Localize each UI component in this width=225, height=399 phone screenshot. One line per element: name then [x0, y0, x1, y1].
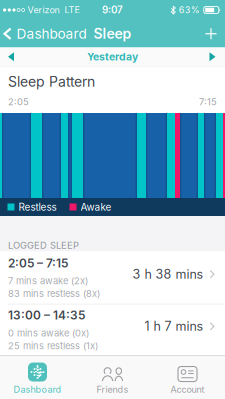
staticText: LTE [65, 4, 80, 15]
button[interactable]: Account [150, 356, 225, 399]
staticText: Yesterday [87, 50, 138, 63]
staticText: Dashboard [13, 384, 61, 395]
staticText: 1 h 7 mins [144, 319, 203, 334]
staticText: 2:05 [8, 96, 29, 107]
staticText: 63% [179, 4, 200, 15]
staticText: 7:15 [199, 96, 217, 107]
staticText: Awake [80, 201, 111, 213]
staticText: Dashboard [16, 25, 86, 42]
staticText: Verizon [28, 4, 60, 15]
staticText: 7 mins awake (2x) [8, 275, 88, 287]
button[interactable]: Add [205, 28, 225, 40]
staticText: 83 mins restless (8x) [8, 288, 100, 299]
staticText: Restless [18, 201, 56, 213]
button[interactable]: Dashboard [0, 356, 75, 399]
button[interactable]: Next day [209, 52, 225, 61]
staticText: 9:07 [102, 4, 123, 16]
button[interactable]: 2:05 – 7:15 [0, 251, 225, 304]
staticText: Account [170, 384, 204, 395]
staticText: Sleep [93, 25, 131, 42]
staticText: 0 mins awake (0x) [8, 327, 89, 339]
button[interactable]: Previous day [0, 52, 14, 61]
staticText: Sleep Pattern [8, 73, 95, 90]
button[interactable]: Friends [75, 356, 150, 399]
staticText: Friends [96, 384, 128, 395]
staticText: 3 h 38 mins [132, 267, 203, 282]
staticText: 2:05 – 7:15 [8, 256, 68, 270]
staticText: 13:00 – 14:35 [8, 308, 85, 322]
button[interactable]: 13:00 – 14:35 [0, 305, 225, 355]
button[interactable]: Dashboard [0, 25, 86, 42]
staticText: 25 mins restless (1x) [8, 340, 98, 351]
staticText: LOGGED SLEEP [8, 240, 79, 251]
